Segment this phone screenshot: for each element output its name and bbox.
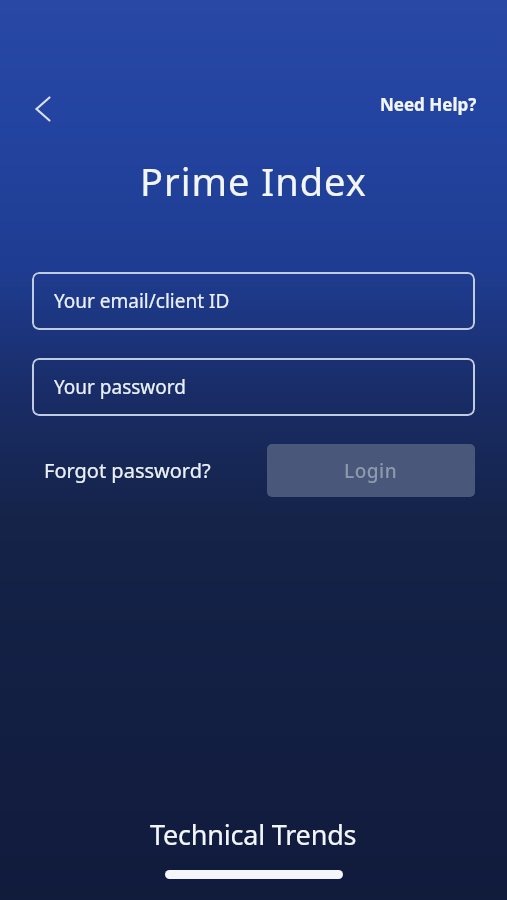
staticText: Login (344, 458, 398, 484)
staticText: Technical Trends (150, 816, 357, 853)
button[interactable]: Your email/client ID (32, 272, 475, 330)
button[interactable]: Forgot password? (36, 449, 219, 492)
staticText: Need Help? (380, 93, 477, 116)
button[interactable]: Login (267, 444, 475, 497)
staticText: Your password (54, 374, 186, 400)
staticText: Forgot password? (44, 457, 211, 484)
button[interactable]: Your password (32, 358, 475, 416)
staticText: Your email/client ID (54, 288, 230, 314)
button[interactable] (21, 87, 65, 131)
button[interactable]: Need Help? (372, 85, 485, 124)
staticText: Prime Index (140, 155, 367, 207)
